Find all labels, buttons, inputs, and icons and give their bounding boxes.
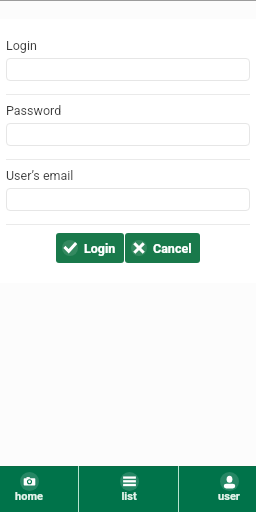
button[interactable]: home [0,466,78,512]
staticText: Cancel [153,241,192,256]
staticText: Login [84,241,116,256]
button[interactable]: user [178,466,256,512]
staticText: list [121,490,137,503]
button[interactable]: list [78,466,178,512]
staticText: User’s email [6,168,74,183]
staticText: Password [6,103,62,118]
staticText: home [15,490,43,503]
button[interactable]: Login [56,233,124,263]
staticText: Login [6,38,37,53]
button[interactable]: Cancel [125,233,200,263]
staticText: user [218,490,240,503]
